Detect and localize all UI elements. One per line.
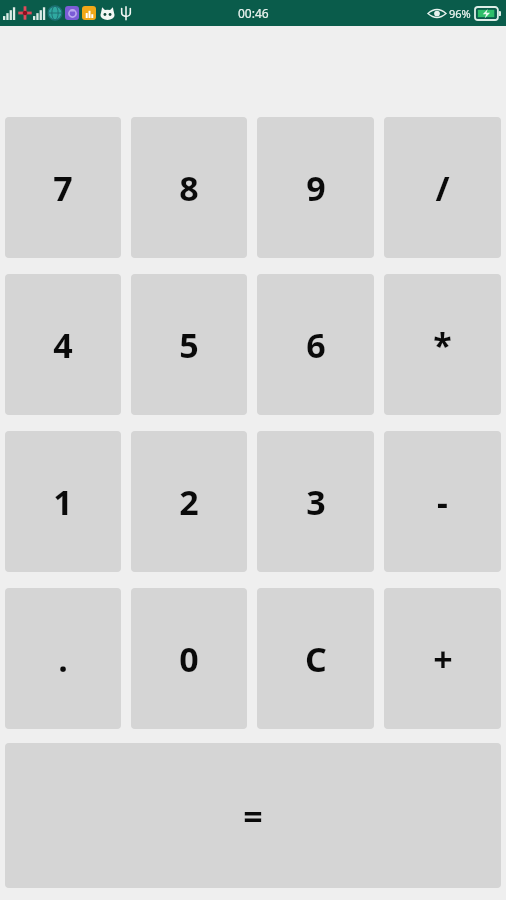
staticText: 9 bbox=[306, 165, 326, 211]
button[interactable]: . bbox=[5, 588, 121, 729]
button[interactable]: / bbox=[384, 117, 501, 258]
staticText: 8 bbox=[179, 165, 199, 211]
button[interactable]: 4 bbox=[5, 274, 121, 415]
button[interactable]: 7 bbox=[5, 117, 121, 258]
staticText: / bbox=[435, 165, 450, 211]
button[interactable]: + bbox=[384, 588, 501, 729]
staticText: = bbox=[243, 793, 263, 839]
staticText: C bbox=[305, 636, 327, 682]
button[interactable]: 6 bbox=[257, 274, 374, 415]
staticText: 00:46 bbox=[238, 5, 269, 21]
button[interactable]: = bbox=[5, 743, 501, 888]
staticText: 3 bbox=[306, 479, 326, 525]
staticText: 4 bbox=[53, 322, 73, 368]
button[interactable]: 9 bbox=[257, 117, 374, 258]
staticText: 7 bbox=[53, 165, 73, 211]
button[interactable]: C bbox=[257, 588, 374, 729]
button[interactable]: 3 bbox=[257, 431, 374, 572]
staticText: 6 bbox=[306, 322, 326, 368]
staticText: 96% bbox=[449, 6, 471, 21]
button[interactable]: 2 bbox=[131, 431, 247, 572]
staticText: 1 bbox=[53, 479, 73, 525]
button[interactable]: 0 bbox=[131, 588, 247, 729]
staticText: 2 bbox=[179, 479, 199, 525]
button[interactable]: - bbox=[384, 431, 501, 572]
staticText: + bbox=[433, 636, 453, 682]
button[interactable]: * bbox=[384, 274, 501, 415]
staticText: 5 bbox=[179, 322, 199, 368]
staticText: . bbox=[58, 636, 68, 682]
staticText: * bbox=[433, 322, 452, 368]
staticText: 0 bbox=[179, 636, 199, 682]
staticText: - bbox=[437, 479, 448, 525]
button[interactable]: 8 bbox=[131, 117, 247, 258]
button[interactable]: 5 bbox=[131, 274, 247, 415]
button[interactable]: 1 bbox=[5, 431, 121, 572]
